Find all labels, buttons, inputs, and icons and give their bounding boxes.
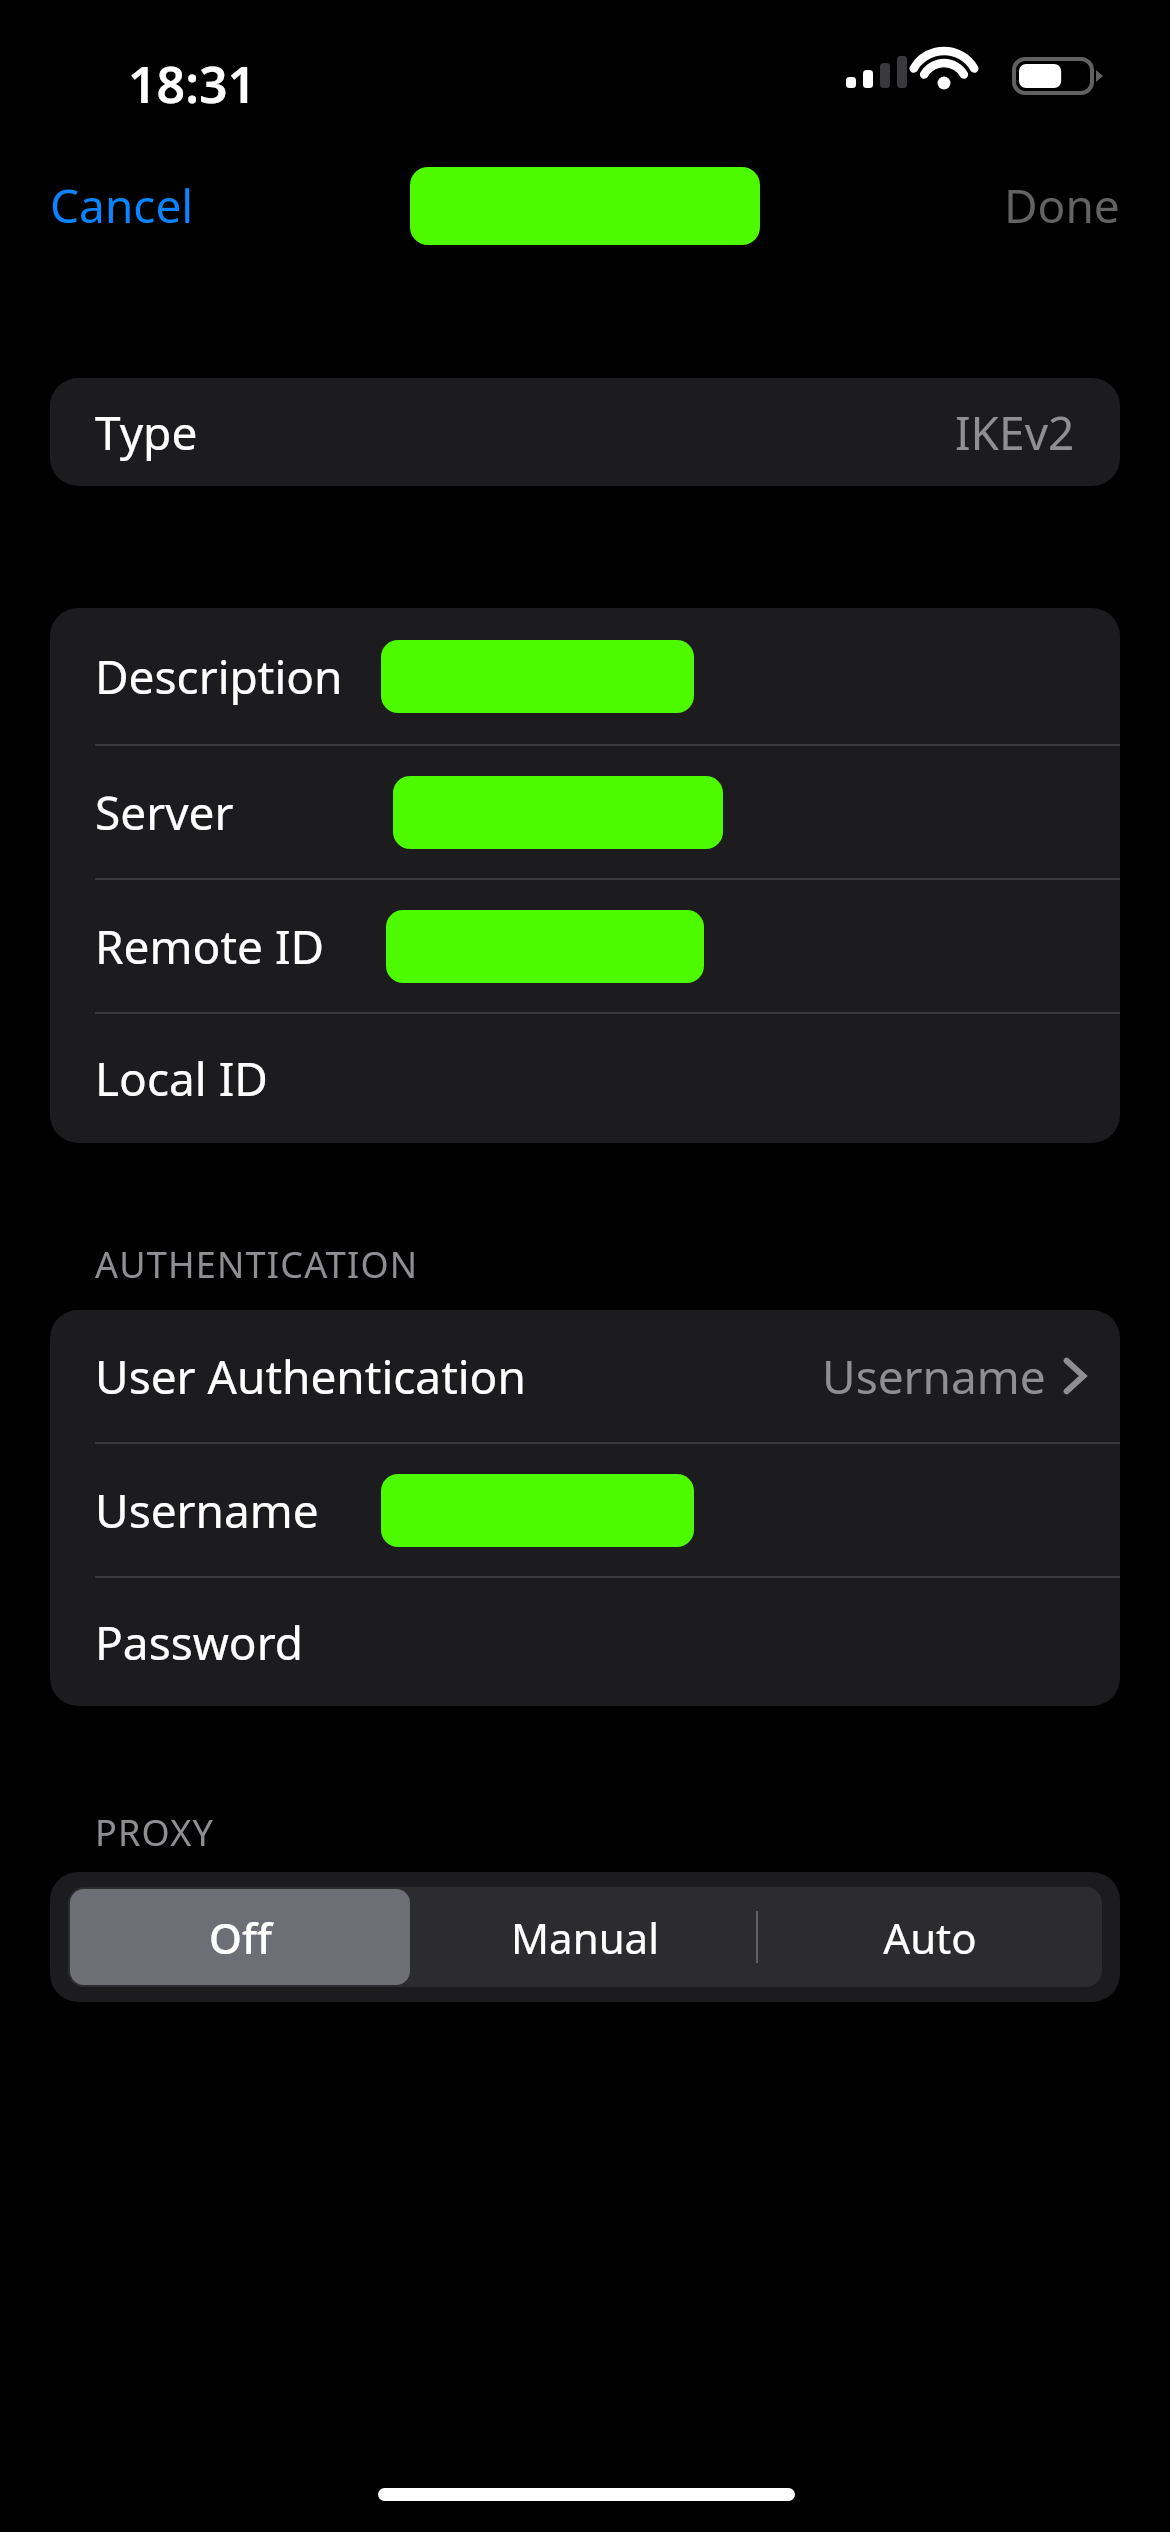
staticText: Local ID <box>95 1047 268 1110</box>
staticText: PROXY <box>95 1808 215 1857</box>
button[interactable]: Auto <box>759 1889 1100 1985</box>
button[interactable]: User Authentication <box>50 1310 1120 1442</box>
staticText: AUTHENTICATION <box>95 1240 419 1289</box>
staticText: 18:31 <box>128 50 257 118</box>
staticText: IKEv2 <box>955 401 1075 464</box>
staticText: Password <box>95 1611 304 1674</box>
staticText: Cancel <box>50 174 194 237</box>
button[interactable]: Cancel <box>18 154 226 257</box>
button[interactable]: Configuration name <box>410 167 760 245</box>
staticText: Username <box>822 1345 1046 1408</box>
staticText: User Authentication <box>95 1345 526 1408</box>
button[interactable]: Manual <box>414 1889 755 1985</box>
staticText: Server <box>95 781 234 844</box>
staticText: Username <box>95 1479 319 1542</box>
button[interactable]: Password <box>50 1578 1120 1706</box>
button[interactable]: Done <box>972 154 1152 257</box>
button[interactable]: Username <box>50 1444 1120 1576</box>
button[interactable]: Server <box>50 746 1120 878</box>
staticText: Off <box>209 1909 272 1966</box>
button[interactable]: Type <box>50 378 1120 486</box>
staticText: Done <box>1004 174 1120 237</box>
button[interactable]: Description <box>50 608 1120 744</box>
staticText: Manual <box>511 1909 659 1966</box>
button[interactable]: Local ID <box>50 1014 1120 1143</box>
button[interactable]: Remote ID <box>50 880 1120 1012</box>
staticText: Remote ID <box>95 915 325 978</box>
staticText: Type <box>95 401 198 464</box>
staticText: Auto <box>883 1909 977 1966</box>
staticText: Description <box>95 645 343 708</box>
button[interactable]: Off <box>70 1889 410 1985</box>
